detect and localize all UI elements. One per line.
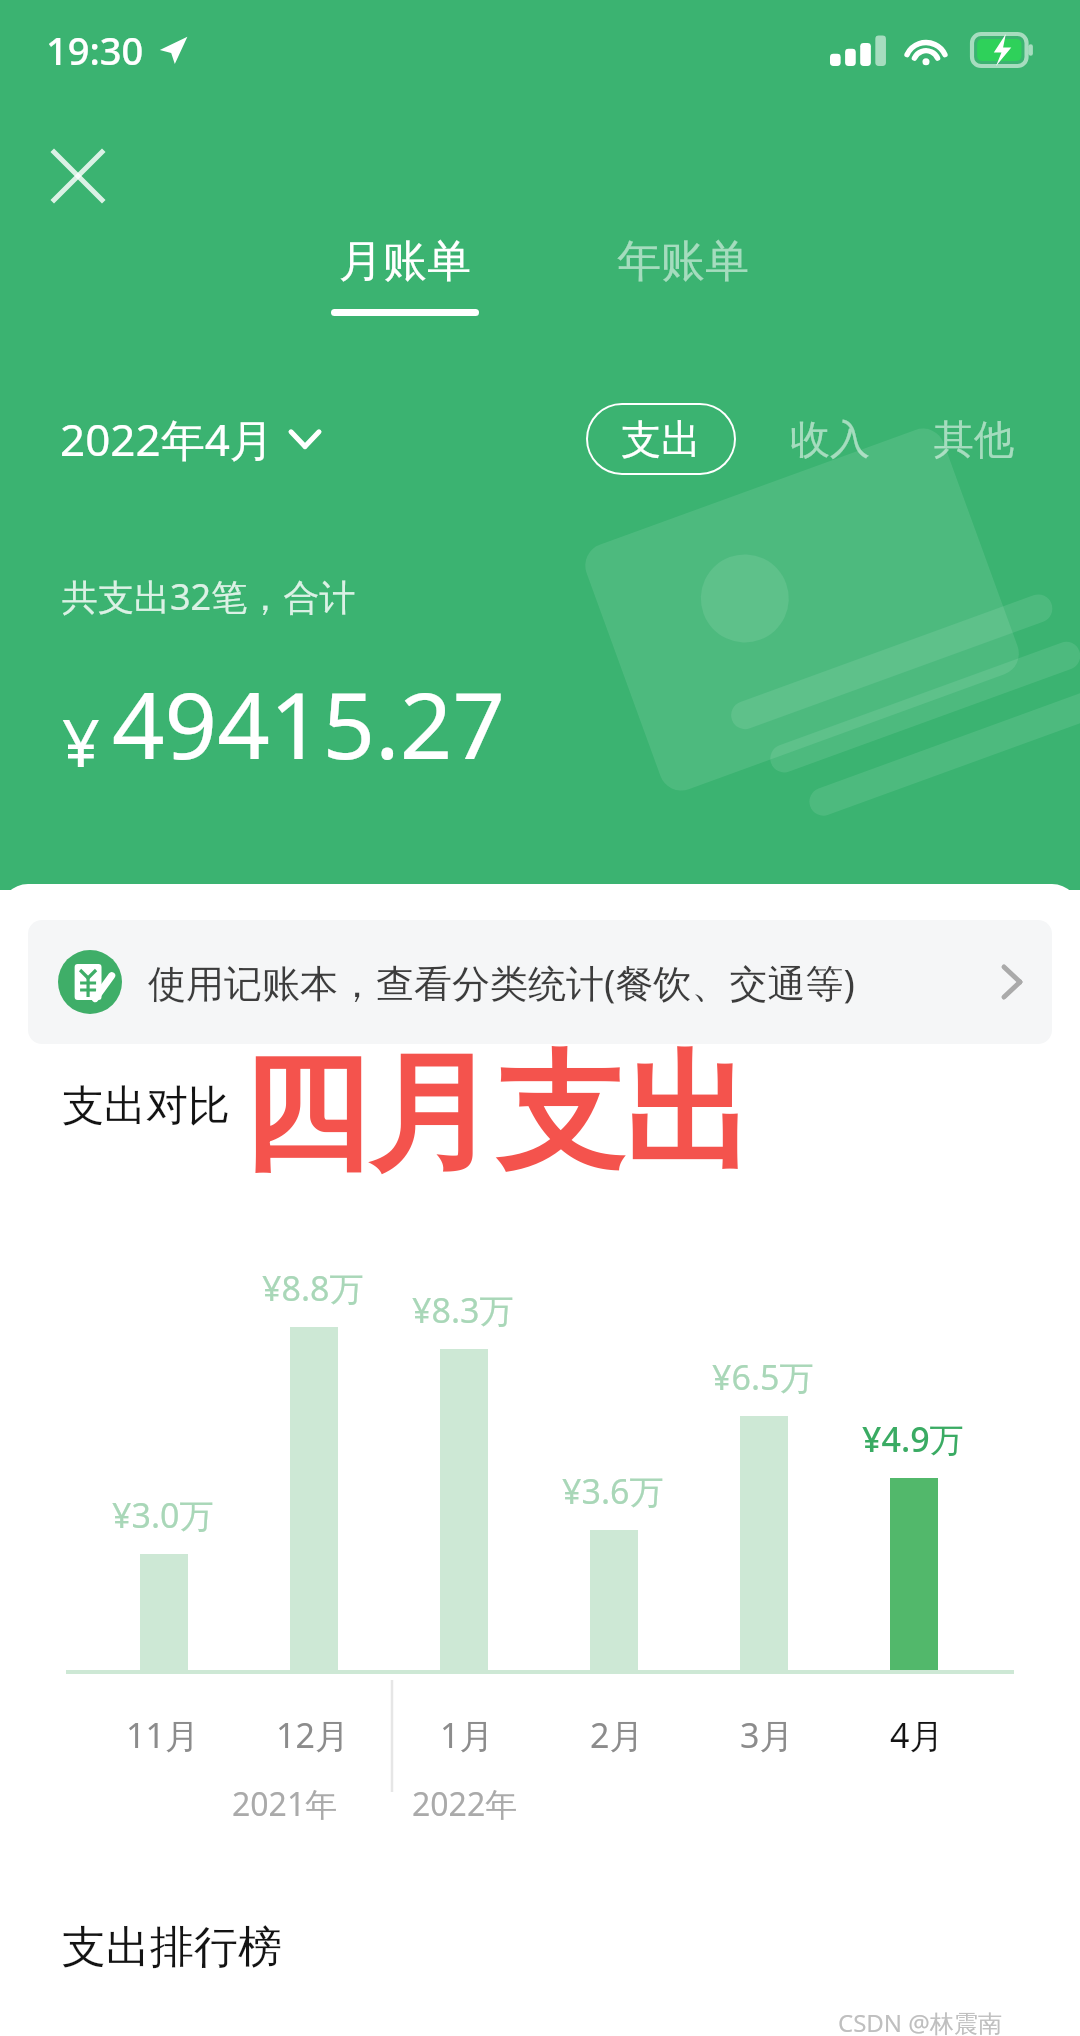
other: Open xyxy=(1002,965,1022,999)
staticText: ¥6.5万 xyxy=(712,1354,814,1400)
staticText: 月账单 xyxy=(339,234,471,289)
staticText: ¥ xyxy=(62,696,100,786)
staticText: 2月 xyxy=(590,1712,644,1758)
staticText: ¥3.6万 xyxy=(562,1468,664,1514)
staticText: 12月 xyxy=(276,1712,349,1758)
button[interactable]: 支出 xyxy=(586,403,736,475)
staticText: 2022年4月 xyxy=(60,409,274,469)
staticText: ¥3.0万 xyxy=(112,1492,214,1538)
staticText: 3月 xyxy=(740,1712,794,1758)
staticText: 共支出32笔，合计 xyxy=(62,572,356,621)
button[interactable]: 使用记账本，查看分类统计(餐饮、交通等) xyxy=(28,920,1052,1044)
staticText: 49415.27 xyxy=(112,661,506,786)
staticText: ¥8.3万 xyxy=(412,1287,514,1333)
staticText: 年账单 xyxy=(617,234,749,289)
staticText: 2022年 xyxy=(412,1782,518,1826)
staticText: 使用记账本，查看分类统计(餐饮、交通等) xyxy=(148,956,855,1008)
staticText: 1月 xyxy=(440,1712,494,1758)
staticText: ¥8.8万 xyxy=(262,1265,364,1311)
staticText: 支出排行榜 xyxy=(62,1920,282,1975)
button[interactable]: 月账单 xyxy=(299,228,511,322)
staticText: 11月 xyxy=(126,1712,199,1758)
button[interactable]: 2022年4月 xyxy=(60,401,320,477)
staticText: 2021年 xyxy=(232,1782,338,1826)
button[interactable]: 年账单 xyxy=(585,228,781,295)
staticText: ¥4.9万 xyxy=(862,1416,964,1462)
staticText: 4月 xyxy=(890,1712,944,1758)
staticText: 支出对比 xyxy=(62,1080,230,1133)
staticText: 支出 xyxy=(621,414,701,464)
staticText: CSDN @林震南 xyxy=(838,2006,1002,2036)
button[interactable]: 其他 xyxy=(920,400,1028,478)
staticText: 四月支出 xyxy=(240,1034,752,1195)
staticText: 其他 xyxy=(934,414,1014,464)
staticText: 收入 xyxy=(790,414,870,464)
staticText: 19:30 xyxy=(46,24,144,76)
button[interactable]: Close xyxy=(34,132,122,220)
button[interactable]: 收入 xyxy=(776,400,884,478)
